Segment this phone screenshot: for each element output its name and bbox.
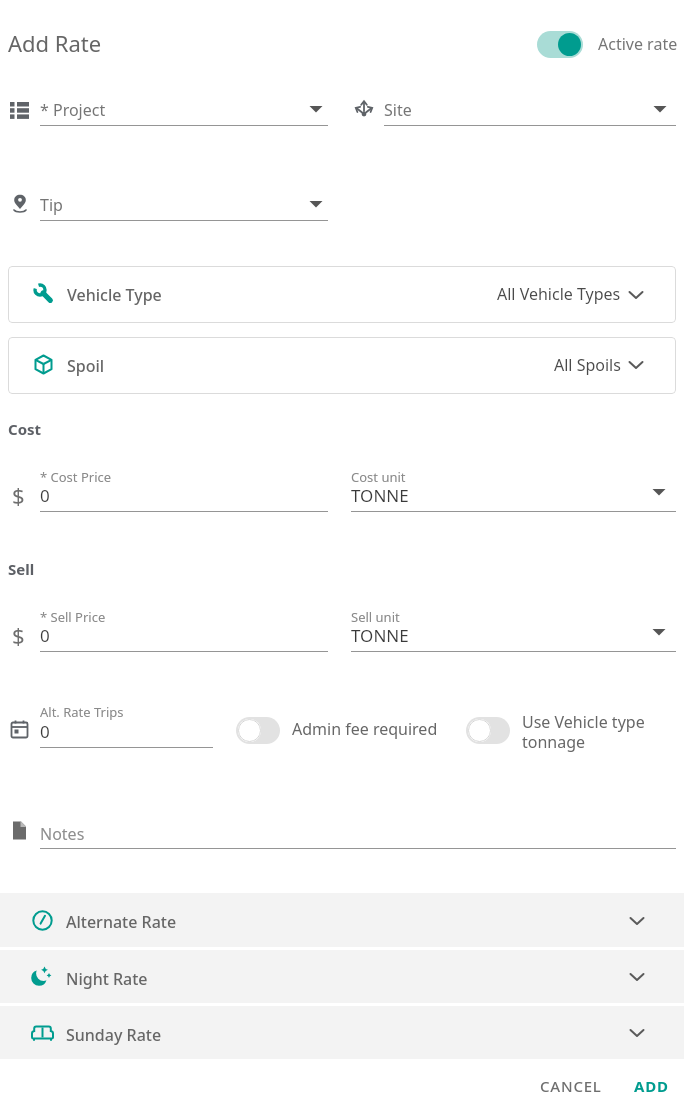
staticText: Notes	[40, 823, 85, 845]
staticText: Add Rate	[8, 28, 102, 58]
staticText: Sell	[8, 559, 35, 579]
staticText: Spoil	[67, 355, 105, 377]
staticText: Use Vehicle type tonnage	[522, 711, 645, 752]
staticText: 0	[40, 624, 50, 647]
button[interactable]	[0, 950, 684, 1003]
staticText: Cost	[8, 419, 42, 439]
button[interactable]	[40, 187, 328, 221]
staticText: * Sell Price	[40, 608, 106, 626]
staticText: TONNE	[351, 484, 409, 507]
staticText: Cost unit	[351, 468, 406, 486]
staticText: ADD	[634, 1076, 669, 1096]
staticText: $	[12, 620, 25, 650]
button[interactable]: ADD	[626, 1068, 676, 1104]
staticText: All Spoils	[554, 354, 621, 376]
staticText: TONNE	[351, 624, 409, 647]
button[interactable]	[40, 92, 328, 126]
staticText: Sell unit	[351, 608, 400, 626]
staticText: * Project	[40, 99, 106, 121]
staticText: Alternate Rate	[66, 911, 177, 933]
staticText: 0	[40, 484, 50, 507]
staticText: 0	[40, 720, 50, 743]
button[interactable]	[0, 1006, 684, 1059]
button[interactable]	[0, 893, 684, 947]
staticText: Sunday Rate	[66, 1024, 162, 1046]
staticText: Tip	[40, 194, 63, 216]
staticText: * Cost Price	[40, 468, 112, 486]
button[interactable]	[351, 478, 676, 512]
staticText: Vehicle Type	[67, 284, 162, 306]
button[interactable]	[537, 31, 583, 58]
staticText: All Vehicle Types	[497, 283, 621, 305]
button[interactable]	[466, 717, 510, 744]
button[interactable]	[351, 618, 676, 652]
staticText: Night Rate	[66, 968, 148, 990]
button[interactable]: CANCEL	[528, 1068, 614, 1104]
button[interactable]	[236, 717, 280, 744]
staticText: Alt. Rate Trips	[40, 703, 124, 721]
staticText: Active rate	[598, 33, 678, 55]
button[interactable]	[40, 815, 676, 849]
button[interactable]	[8, 266, 676, 323]
staticText: Admin fee required	[292, 718, 438, 740]
staticText: $	[12, 480, 25, 510]
staticText: CANCEL	[540, 1076, 602, 1096]
button[interactable]	[8, 337, 676, 394]
staticText: Site	[384, 99, 412, 121]
